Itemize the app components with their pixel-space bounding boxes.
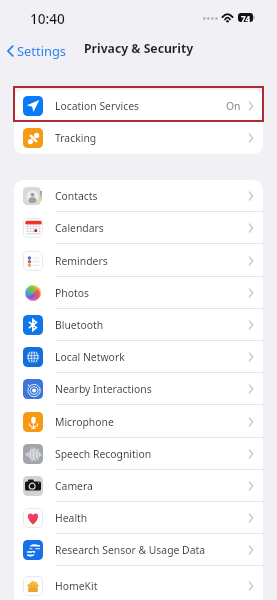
staticText: Calendars — [55, 221, 104, 235]
button[interactable]: Camera — [14, 470, 263, 502]
staticText: Bluetooth — [55, 318, 104, 332]
button[interactable]: Tracking — [14, 122, 263, 154]
staticText: Local Network — [55, 350, 125, 364]
staticText: On — [226, 99, 241, 113]
staticText: Location Services — [55, 99, 140, 113]
button[interactable]: Reminders — [14, 244, 263, 277]
staticText: Research Sensor & Usage Data — [55, 543, 206, 557]
button[interactable]: Settings — [7, 42, 67, 60]
staticText: 10:40 — [30, 9, 65, 28]
staticText: Photos — [55, 286, 90, 300]
staticText: Tracking — [55, 131, 97, 145]
staticText: Contacts — [55, 189, 98, 203]
button[interactable]: Location Services — [14, 90, 263, 122]
button[interactable]: Microphone — [14, 405, 263, 438]
staticText: Privacy & Security — [84, 40, 194, 57]
button[interactable]: Contacts — [14, 180, 263, 212]
button[interactable]: HomeKit — [14, 566, 263, 600]
staticText: Reminders — [55, 254, 108, 268]
staticText: Nearby Interactions — [55, 382, 152, 396]
button[interactable]: Speech Recognition — [14, 438, 263, 470]
button[interactable]: Photos — [14, 277, 263, 309]
staticText: Microphone — [55, 415, 114, 429]
button[interactable]: Health — [14, 502, 263, 534]
button[interactable]: Local Network — [14, 341, 263, 373]
staticText: Health — [55, 511, 88, 525]
button[interactable]: Calendars — [14, 212, 263, 244]
staticText: Camera — [55, 479, 93, 493]
button[interactable]: Bluetooth — [14, 309, 263, 341]
staticText: Settings — [17, 42, 67, 60]
staticText: Speech Recognition — [55, 447, 152, 461]
button[interactable]: Nearby Interactions — [14, 373, 263, 405]
button[interactable]: Research Sensor & Usage Data — [14, 534, 263, 566]
staticText: HomeKit — [55, 579, 98, 593]
staticText: 74 — [241, 13, 251, 24]
